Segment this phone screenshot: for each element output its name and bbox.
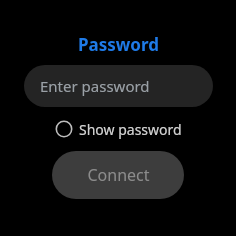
other: Show password toggle xyxy=(54,119,74,139)
staticText: Show password xyxy=(79,120,182,139)
button[interactable]: Show password toggle xyxy=(50,116,186,142)
button[interactable]: Enter password xyxy=(24,65,213,107)
staticText: Enter password xyxy=(40,76,150,96)
staticText: Password xyxy=(78,33,159,56)
button[interactable]: Connect xyxy=(52,151,184,199)
staticText: Connect xyxy=(87,164,150,186)
